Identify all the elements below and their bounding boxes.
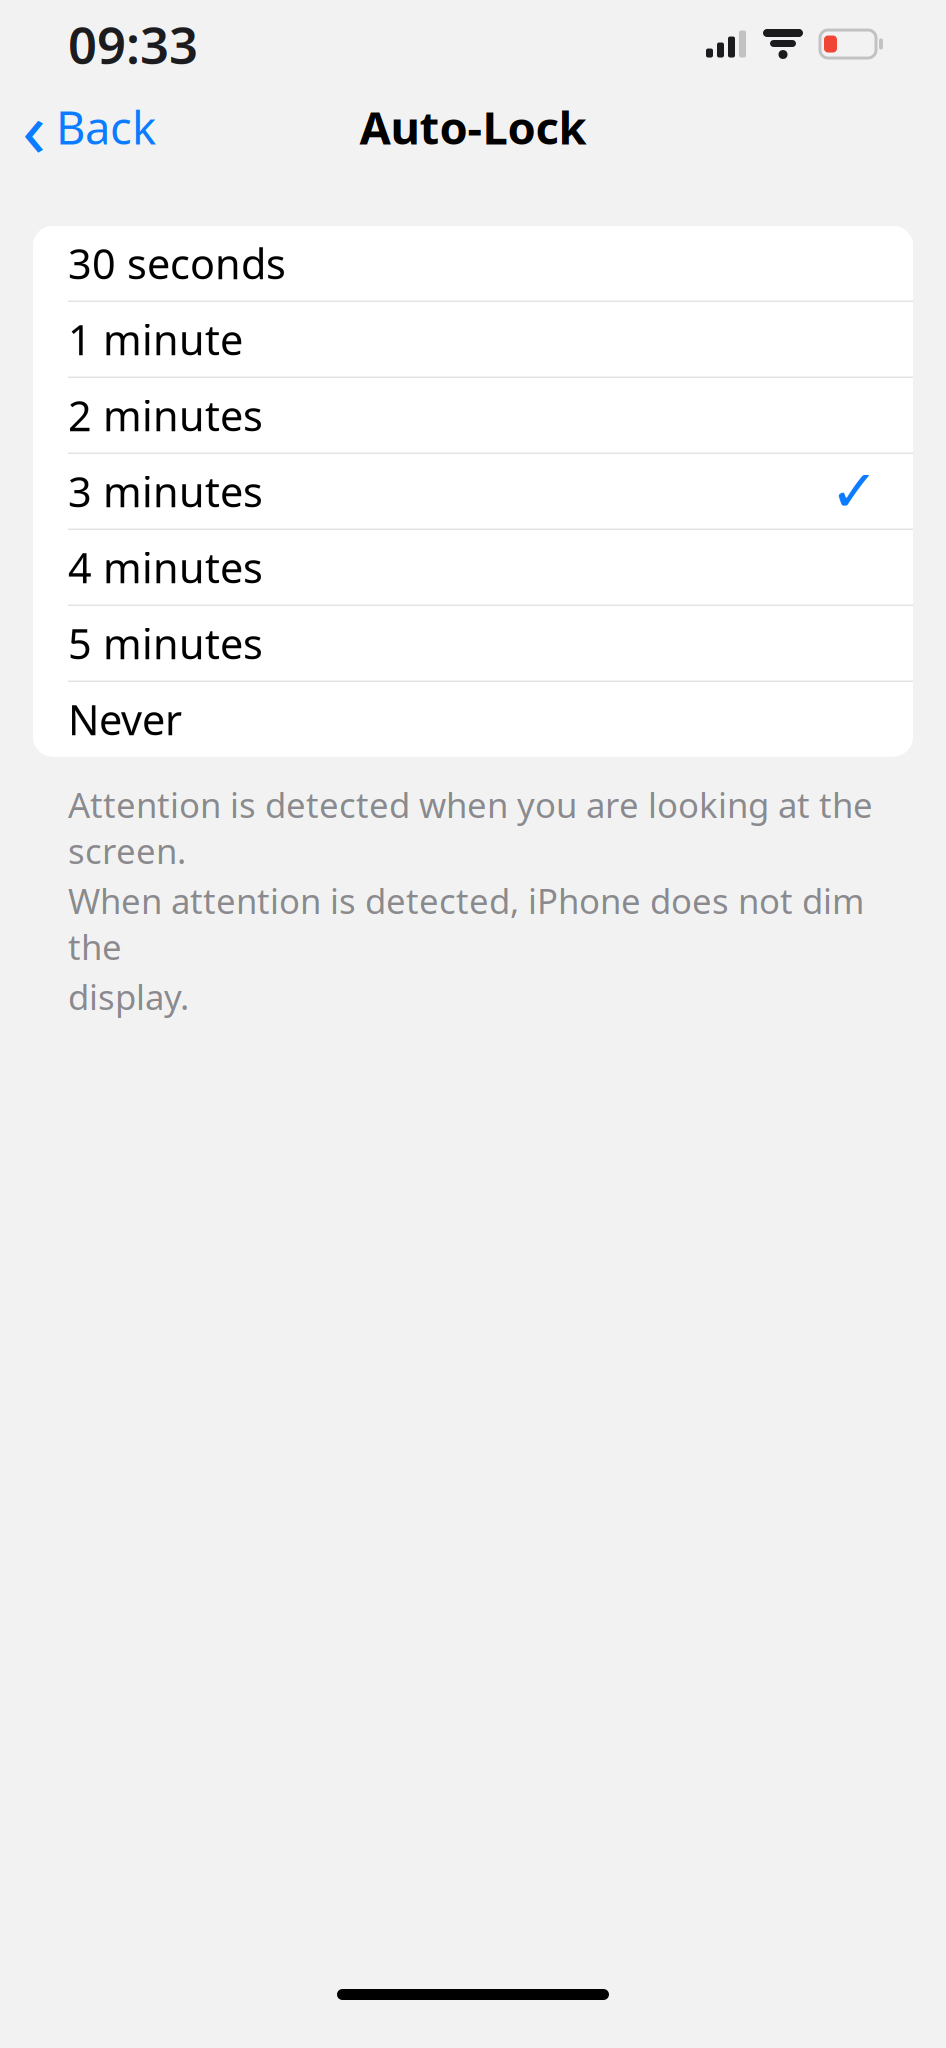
staticText: ✓ (830, 458, 879, 525)
button[interactable]: 5 minutes (33, 606, 913, 680)
staticText: Back (56, 97, 156, 157)
staticText: 5 minutes (68, 616, 263, 671)
staticText: 4 minutes (68, 540, 263, 595)
staticText: 2 minutes (68, 388, 263, 443)
staticText: Attention is detected when you are looki… (68, 781, 873, 874)
staticText: Never (68, 692, 182, 747)
button[interactable]: 1 minute (33, 302, 913, 376)
staticText: 09:33 (68, 10, 198, 78)
button[interactable]: 3 minutes (33, 454, 913, 528)
staticText: ‹ (22, 76, 46, 178)
button[interactable]: 30 seconds (33, 226, 913, 300)
button[interactable]: Never (33, 682, 913, 756)
staticText: display. (68, 974, 189, 1020)
button[interactable]: 2 minutes (33, 378, 913, 452)
staticText: 3 minutes (68, 464, 263, 519)
staticText: Auto-Lock (359, 97, 586, 157)
staticText: 1 minute (68, 312, 243, 367)
staticText: When attention is detected, iPhone does … (68, 878, 864, 970)
button[interactable]: ‹ (0, 66, 174, 188)
staticText: 30 seconds (68, 236, 286, 291)
button[interactable]: 4 minutes (33, 530, 913, 604)
